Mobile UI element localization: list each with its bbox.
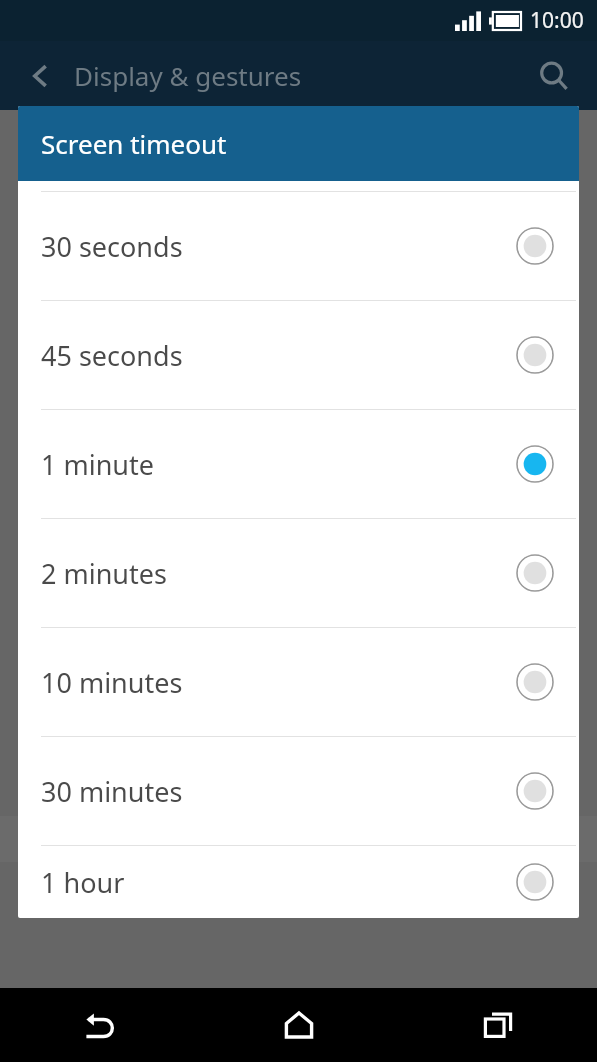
staticText: Screen timeout — [41, 126, 227, 161]
staticText: Display & gestures — [74, 58, 302, 93]
button[interactable]: Home — [199, 988, 398, 1062]
button[interactable]: 2 minutes — [18, 519, 579, 627]
button[interactable]: 10 minutes — [18, 628, 579, 736]
button[interactable]: Back — [22, 57, 60, 95]
staticText: 45 seconds — [41, 337, 516, 374]
staticText: 10:00 — [530, 6, 584, 35]
button[interactable]: 45 seconds — [18, 301, 579, 409]
button[interactable]: Back — [0, 988, 199, 1062]
button[interactable]: 1 minute — [18, 410, 579, 518]
staticText: 1 minute — [41, 446, 516, 483]
staticText: 30 seconds — [41, 228, 516, 265]
staticText: 10 minutes — [41, 664, 516, 701]
button[interactable]: Recent apps — [398, 988, 597, 1062]
button[interactable]: 1 hour — [18, 846, 579, 918]
button[interactable]: Search — [533, 55, 575, 97]
staticText: 2 minutes — [41, 555, 516, 592]
staticText: 1 hour — [41, 864, 516, 901]
staticText: 30 minutes — [41, 773, 516, 810]
button[interactable]: 30 seconds — [18, 192, 579, 300]
button[interactable]: 30 minutes — [18, 737, 579, 845]
